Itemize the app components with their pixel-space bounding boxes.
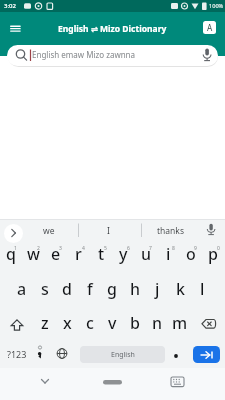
staticText: 3 (59, 245, 62, 252)
button[interactable] (193, 346, 220, 363)
button[interactable]: g (101, 278, 123, 300)
button[interactable]: t (90, 243, 112, 265)
staticText: ?123 (7, 348, 27, 360)
staticText: thanks (157, 225, 184, 237)
staticText: I (107, 225, 110, 237)
staticText: r (75, 243, 82, 265)
button[interactable] (7, 45, 218, 66)
button[interactable]: h (124, 278, 146, 300)
staticText: 5 (104, 245, 107, 252)
staticText: m (172, 312, 188, 334)
button[interactable]: c (79, 312, 101, 334)
button[interactable]: we (21, 222, 77, 240)
staticText: 2 (37, 245, 40, 252)
staticText: n (152, 312, 163, 334)
staticText: q (6, 243, 16, 265)
button[interactable] (4, 224, 23, 243)
staticText: j (155, 278, 160, 300)
button[interactable]: a (11, 278, 33, 300)
staticText: 7 (149, 245, 152, 252)
staticText: we (43, 225, 55, 237)
staticText: a (17, 278, 27, 300)
staticText: t (98, 243, 105, 265)
button[interactable]: i (157, 243, 179, 265)
staticText: c (86, 312, 94, 334)
button[interactable]: e (45, 243, 67, 265)
staticText: o (186, 243, 196, 265)
staticText: A (207, 22, 213, 33)
staticText: 6 (127, 245, 130, 252)
staticText: g (107, 278, 117, 300)
staticText: z (41, 312, 49, 334)
button[interactable] (8, 316, 26, 334)
button[interactable]: j (146, 278, 168, 300)
button[interactable]: v (101, 312, 123, 334)
button[interactable]: d (56, 278, 78, 300)
button[interactable]: f (79, 278, 101, 300)
staticText: 1 (14, 245, 17, 252)
button[interactable]: I (80, 222, 136, 240)
staticText: p (208, 243, 218, 265)
staticText: u (141, 243, 152, 265)
staticText: d (62, 278, 72, 300)
button[interactable] (199, 315, 219, 333)
staticText: English (111, 350, 135, 360)
staticText: i (166, 243, 171, 265)
staticText: v (108, 312, 117, 334)
button[interactable]: m (169, 312, 191, 334)
button[interactable]: b (124, 312, 146, 334)
button[interactable]: z (34, 312, 56, 334)
button[interactable]: x (56, 312, 78, 334)
staticText: l (200, 278, 205, 300)
staticText: 8 (172, 245, 175, 252)
button[interactable]: n (146, 312, 168, 334)
button[interactable]: o (180, 243, 202, 265)
staticText: k (176, 278, 185, 300)
button[interactable]: u (135, 243, 157, 265)
button[interactable]: s (34, 278, 56, 300)
button[interactable]: p (202, 243, 224, 265)
staticText: h (130, 278, 141, 300)
staticText: f (87, 278, 93, 300)
staticText: 100% (209, 2, 224, 10)
staticText: 3:02 (4, 2, 16, 10)
button[interactable]: A (203, 21, 216, 34)
button[interactable]: thanks (142, 222, 198, 240)
button[interactable]: w (22, 243, 44, 265)
button[interactable]: English (80, 346, 165, 363)
button[interactable]: l (191, 278, 213, 300)
staticText: x (63, 312, 72, 334)
button[interactable]: r (67, 243, 89, 265)
staticText: 4 (82, 245, 85, 252)
button[interactable]: k (169, 278, 191, 300)
staticText: 9 (194, 245, 197, 252)
button[interactable] (8, 23, 24, 35)
button[interactable]: ?123 (3, 346, 31, 362)
staticText: English ⇌ Mizo Dictionary (58, 23, 167, 35)
staticText: y (119, 243, 128, 265)
staticText: 0 (217, 245, 220, 252)
staticText: s (41, 278, 49, 300)
button[interactable]: q (0, 243, 22, 265)
staticText: w (27, 243, 40, 265)
staticText: English emaw Mizo zawnna (32, 49, 136, 60)
button[interactable]: y (112, 243, 134, 265)
staticText: e (51, 243, 61, 265)
staticText: b (130, 312, 140, 334)
